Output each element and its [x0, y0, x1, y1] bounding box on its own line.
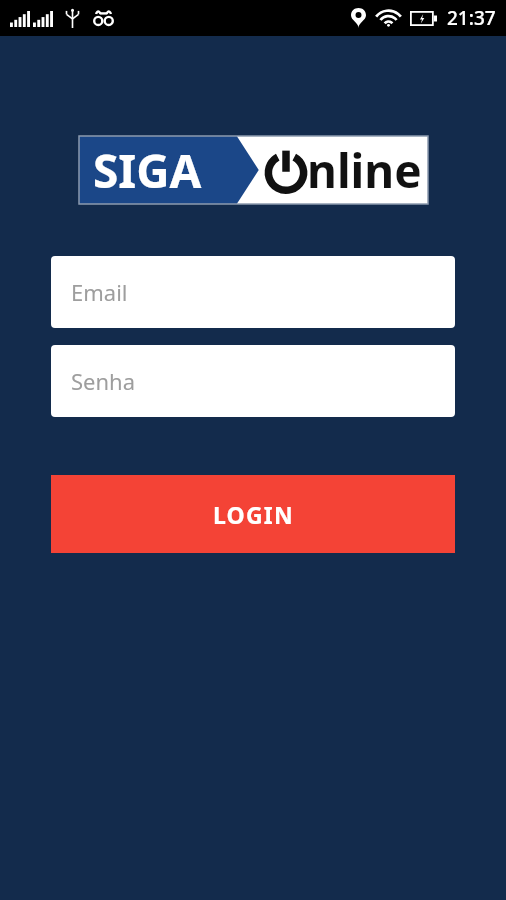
button[interactable]: Senha [51, 345, 455, 417]
staticText: nline [307, 139, 422, 202]
staticText: SIGA [93, 139, 202, 202]
staticText: LOGIN [213, 499, 294, 530]
staticText: Senha [71, 366, 136, 396]
staticText: 21:37 [447, 5, 496, 31]
button[interactable]: LOGIN [51, 475, 455, 553]
button[interactable]: Email [51, 256, 455, 328]
staticText: Email [71, 277, 128, 307]
